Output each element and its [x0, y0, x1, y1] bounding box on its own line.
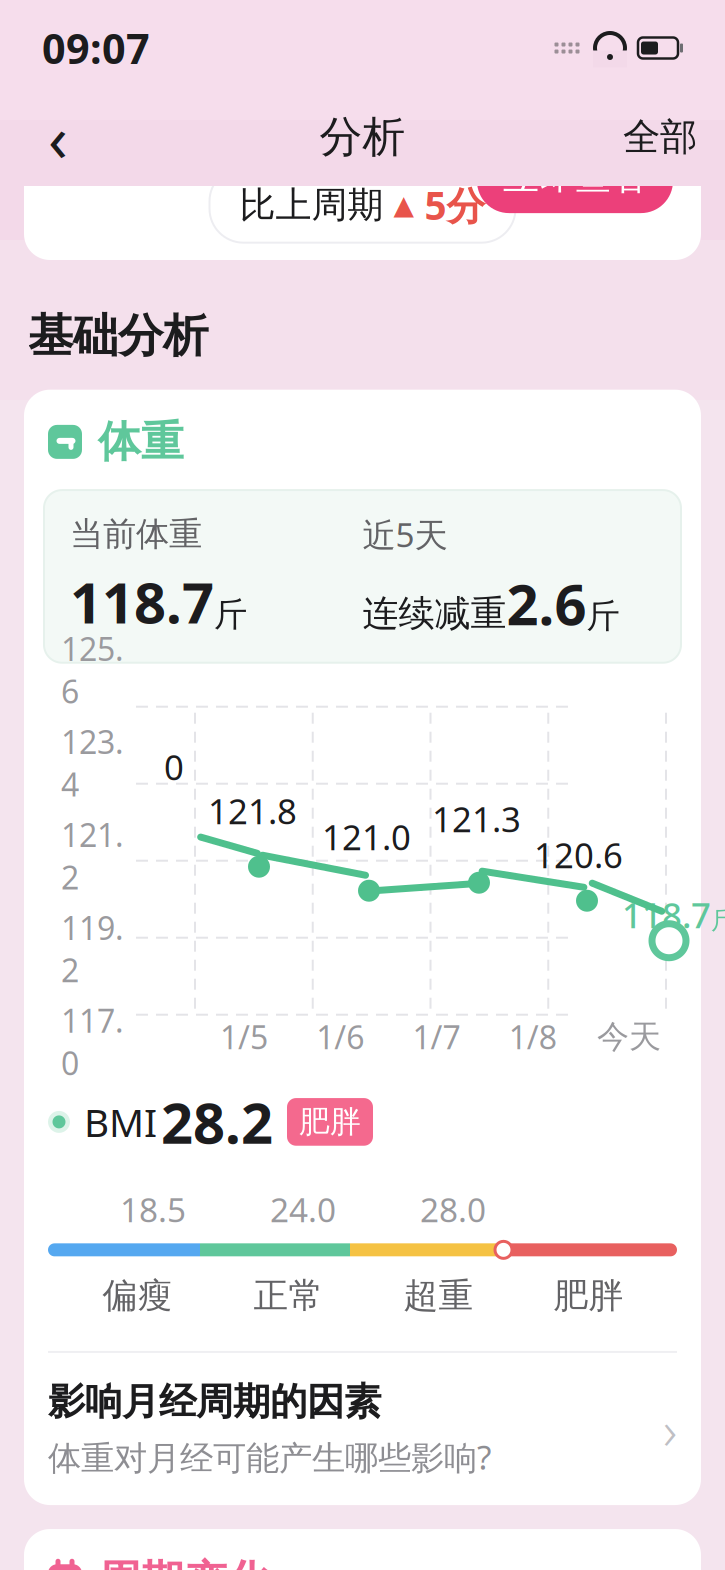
- staticText: 5分: [424, 179, 485, 231]
- staticText: 影响月经周期的因素: [48, 1379, 381, 1425]
- staticText: 偏瘦: [102, 1274, 172, 1317]
- staticText: 1/5: [220, 1015, 268, 1058]
- staticText: 斤: [586, 596, 619, 637]
- staticText: 120.6: [534, 832, 623, 878]
- staticText: 斤: [214, 594, 247, 635]
- staticText: 体重: [98, 416, 184, 468]
- staticText: 117.0: [61, 999, 124, 1084]
- staticText: ›: [663, 1394, 677, 1464]
- staticText: 超重: [403, 1274, 473, 1317]
- staticText: 1/6: [316, 1015, 364, 1058]
- staticText: 121.8: [208, 788, 297, 834]
- staticText: 09:07: [42, 21, 150, 75]
- staticText: 1/7: [412, 1015, 460, 1058]
- staticText: 123.4: [61, 720, 124, 805]
- staticText: 连续减重: [362, 591, 506, 636]
- button[interactable]: 影响月经周期的因素: [24, 1353, 701, 1505]
- staticText: 肥胖: [299, 1103, 361, 1141]
- staticText: 125.6: [61, 627, 124, 712]
- staticText: 近5天: [362, 512, 447, 556]
- staticText: 24.0: [270, 1187, 336, 1231]
- staticText: 118.7: [622, 892, 711, 938]
- staticText: BMI: [84, 1096, 157, 1147]
- staticText: 正常: [253, 1274, 323, 1317]
- button[interactable]: 返回: [28, 107, 88, 167]
- staticText: 2.6: [506, 566, 586, 641]
- staticText: 分析: [319, 111, 405, 163]
- button[interactable]: 全部: [623, 107, 697, 167]
- staticText: 119.2: [61, 906, 124, 991]
- staticText: 斤: [711, 905, 725, 936]
- staticText: ‹: [48, 94, 68, 179]
- staticText: 118.7: [70, 565, 214, 639]
- staticText: 121.2: [61, 813, 124, 898]
- staticText: 体重对月经可能产生哪些影响?: [48, 1435, 491, 1479]
- staticText: 28.0: [420, 1187, 486, 1231]
- staticText: 121.0: [322, 814, 411, 860]
- staticText: 立即查看: [503, 155, 647, 199]
- staticText: 1/8: [509, 1015, 557, 1058]
- staticText: 28.2: [161, 1085, 273, 1159]
- staticText: 121.3: [432, 796, 521, 842]
- staticText: 周期变化: [98, 1555, 270, 1570]
- staticText: 0: [164, 744, 184, 790]
- staticText: 当前体重: [70, 514, 202, 555]
- staticText: 肥胖: [553, 1274, 623, 1317]
- staticText: ▲: [393, 190, 414, 220]
- staticText: 18.5: [120, 1187, 186, 1231]
- staticText: 今天: [597, 1017, 661, 1056]
- button[interactable]: 立即查看: [477, 141, 673, 213]
- staticText: 全部: [623, 114, 697, 160]
- staticText: 基础分析: [28, 308, 208, 364]
- staticText: 比上周期: [239, 183, 383, 227]
